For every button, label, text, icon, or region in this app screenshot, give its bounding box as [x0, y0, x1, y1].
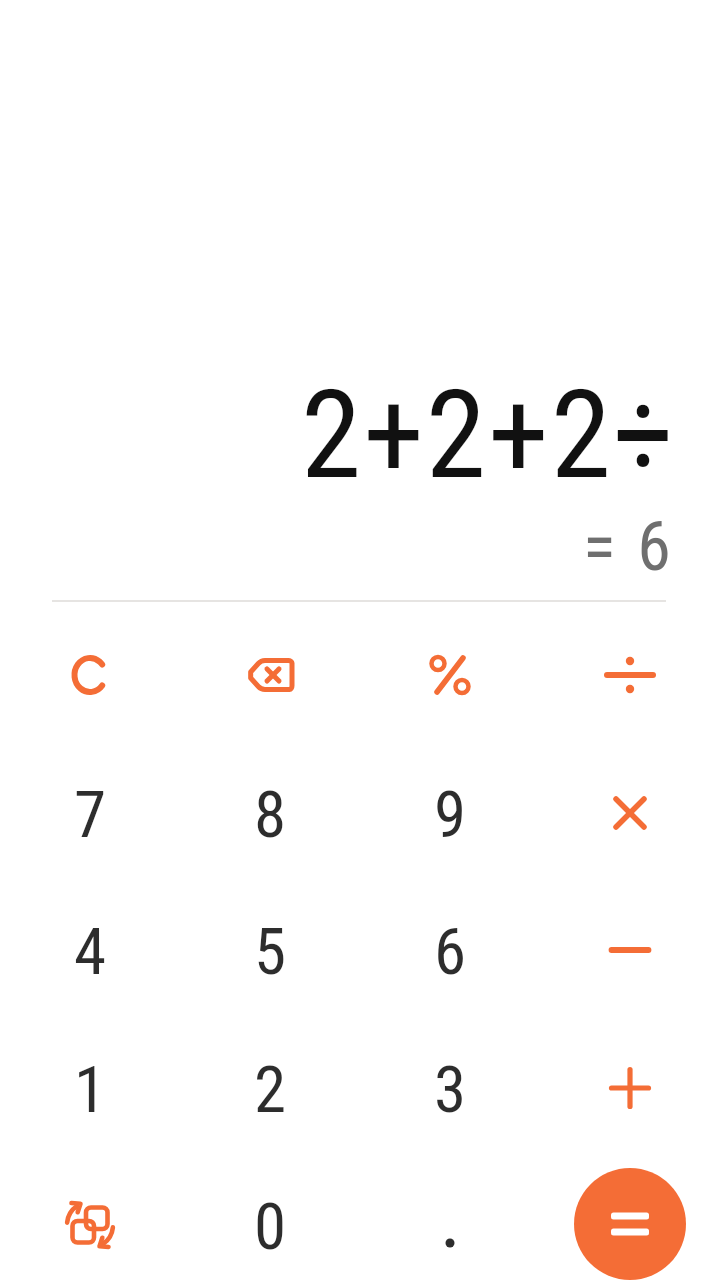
button[interactable]: [0, 1156, 180, 1280]
staticText: 7: [74, 777, 107, 853]
staticText: 2+2+2÷: [301, 364, 676, 507]
button[interactable]: 7: [0, 744, 180, 881]
button[interactable]: 6: [360, 881, 540, 1018]
button[interactable]: [180, 606, 360, 743]
button[interactable]: 4: [0, 881, 180, 1018]
button[interactable]: 1: [0, 1019, 180, 1156]
button[interactable]: [0, 606, 180, 743]
button[interactable]: [360, 606, 540, 743]
staticText: 6: [434, 914, 467, 990]
staticText: 1: [74, 1052, 107, 1128]
staticText: = 6: [583, 507, 674, 587]
button[interactable]: 2: [180, 1019, 360, 1156]
staticText: 4: [74, 914, 107, 990]
button[interactable]: 8: [180, 744, 360, 881]
button[interactable]: [540, 606, 720, 743]
button[interactable]: [574, 1168, 686, 1280]
staticText: 8: [254, 777, 287, 853]
button[interactable]: 9: [360, 744, 540, 881]
staticText: 5: [254, 914, 287, 990]
staticText: 2: [254, 1052, 287, 1128]
staticText: 9: [434, 777, 467, 853]
button[interactable]: 5: [180, 881, 360, 1018]
button[interactable]: [540, 881, 720, 1018]
staticText: 3: [434, 1052, 467, 1128]
button[interactable]: [540, 744, 720, 881]
staticText: 0: [254, 1189, 287, 1265]
button[interactable]: 0: [180, 1156, 360, 1280]
button[interactable]: [540, 1019, 720, 1156]
button[interactable]: 3: [360, 1019, 540, 1156]
button[interactable]: [360, 1156, 540, 1280]
